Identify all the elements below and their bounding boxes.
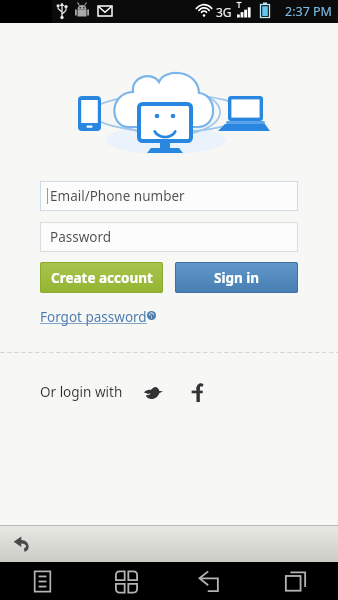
button[interactable]: Password [40,222,298,252]
button[interactable]: Forgot password [40,308,156,326]
staticText: Forgot password [40,308,147,326]
button[interactable]: Create account [40,262,163,293]
button[interactable]: Email/Phone number [40,181,298,211]
button[interactable]: Login with Twitter [141,380,165,404]
staticText: Password [50,228,112,246]
button[interactable]: Menu [0,562,84,600]
button[interactable]: Login with Facebook [185,380,209,404]
staticText: 2:37 PM [285,3,332,20]
button[interactable]: Recent apps [253,562,338,600]
staticText: Email/Phone number [50,187,185,205]
button[interactable]: Back [0,525,44,562]
button[interactable]: Sign in [175,262,298,293]
staticText: 3G [216,4,232,20]
staticText: Create account [51,269,153,287]
button[interactable]: Apps [84,562,168,600]
staticText: Or login with [40,383,123,401]
staticText: Sign in [214,269,260,287]
button[interactable]: Back [168,562,253,600]
